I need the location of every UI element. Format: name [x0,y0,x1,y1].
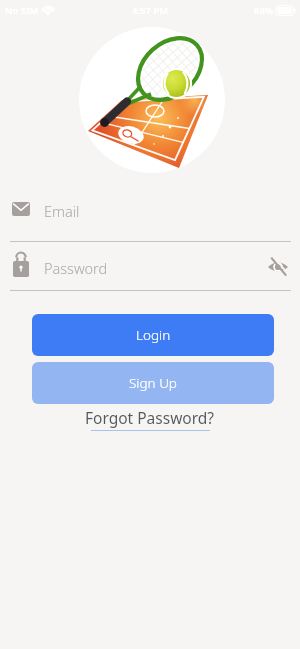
staticText: Email [44,201,80,221]
button[interactable]: Login [32,314,274,356]
staticText: Password [44,258,108,278]
staticText: Forgot Password? [85,407,215,428]
staticText: No SIM [5,4,39,17]
staticText: Login [136,326,171,344]
button[interactable]: Forgot Password? [85,407,215,431]
staticText: 88% [254,4,274,17]
staticText: 4:57 PM [132,4,169,17]
staticText: Sign Up [129,374,177,392]
button[interactable] [267,256,289,278]
button[interactable]: Sign Up [32,362,274,404]
